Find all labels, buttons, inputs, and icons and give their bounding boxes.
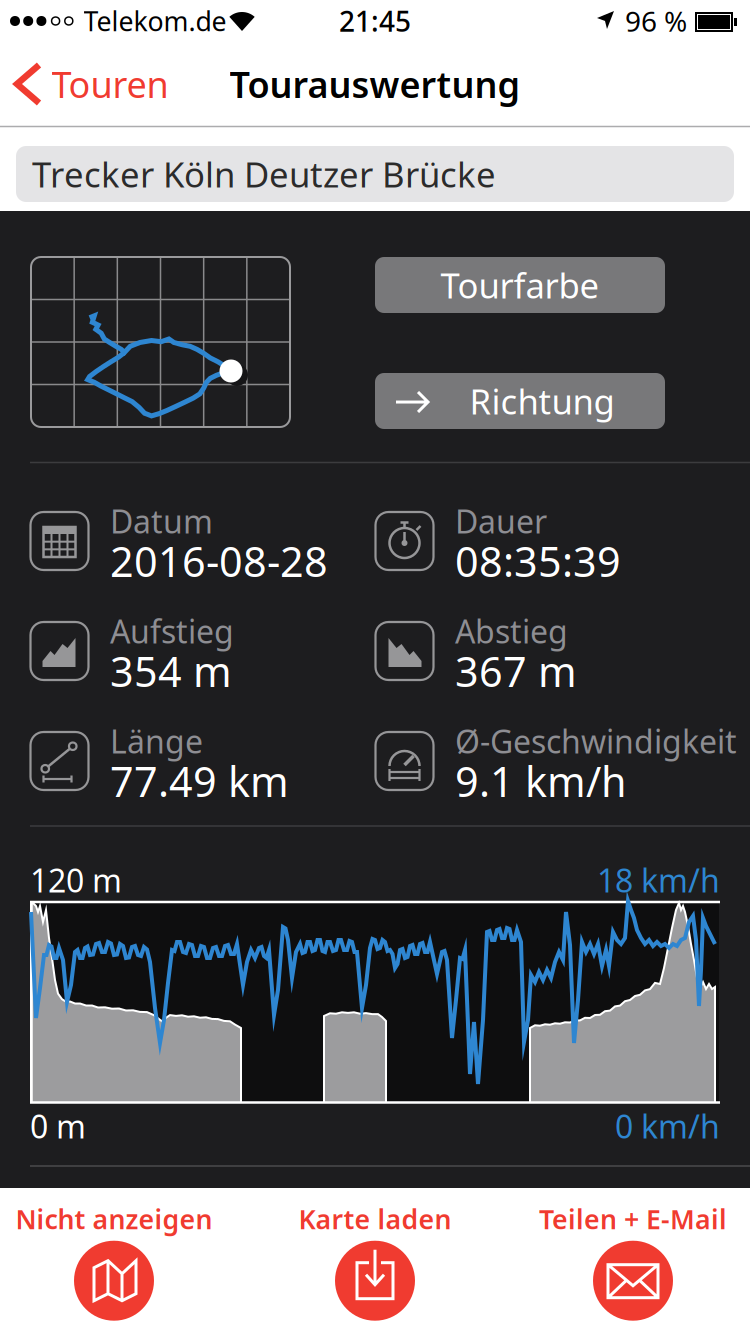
staticText: Aufstieg (110, 610, 234, 652)
staticText: 0 m (30, 1105, 86, 1147)
staticText: 77.49 km (110, 754, 289, 808)
button[interactable] (31, 257, 290, 427)
staticText: 354 m (110, 644, 232, 698)
staticText: 08:35:39 (455, 534, 621, 588)
staticText: Tourauswertung (229, 60, 520, 108)
staticText: Touren (51, 60, 168, 108)
staticText: Tourfarbe (440, 262, 599, 308)
staticText: 21:45 (339, 2, 411, 40)
staticText: 18 km/h (597, 859, 720, 901)
staticText: 120 m (30, 859, 122, 901)
button[interactable]: Karte laden (255, 1202, 495, 1320)
button[interactable]: Nicht anzeigen (0, 1202, 234, 1320)
staticText: Länge (110, 720, 203, 762)
staticText: 367 m (455, 644, 577, 698)
staticText: Nicht anzeigen (15, 1201, 212, 1237)
button[interactable]: Teilen + E-Mail (513, 1202, 750, 1320)
staticText: Telekom.de (83, 3, 226, 39)
button[interactable]: Richtung (375, 373, 665, 429)
staticText: Abstieg (455, 610, 568, 652)
staticText: Karte laden (298, 1201, 451, 1237)
staticText: Dauer (455, 500, 547, 542)
staticText: 0 km/h (615, 1105, 720, 1147)
staticText: Teilen + E-Mail (539, 1201, 727, 1237)
button[interactable]: Trecker Köln Deutzer Brücke (16, 146, 734, 202)
staticText: 96 % (625, 2, 687, 40)
button[interactable]: Tourfarbe (375, 257, 665, 313)
staticText: Ø-Geschwindigkeit (455, 720, 737, 762)
button[interactable]: Touren (2, 62, 182, 106)
staticText: Datum (110, 500, 213, 542)
staticText: 9.1 km/h (455, 754, 627, 808)
staticText: Trecker Köln Deutzer Brücke (32, 151, 496, 197)
staticText: 2016-08-28 (110, 534, 328, 588)
staticText: Richtung (469, 378, 614, 424)
